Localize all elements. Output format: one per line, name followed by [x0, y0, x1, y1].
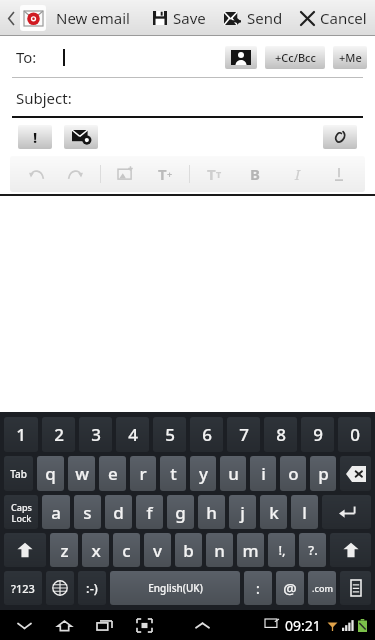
button[interactable]: !, [268, 533, 295, 567]
button[interactable]: a [42, 495, 70, 529]
staticText: c [122, 539, 131, 562]
button[interactable]: Shift [4, 533, 46, 567]
button[interactable]: Send [224, 0, 283, 36]
button[interactable]: h [198, 495, 225, 529]
staticText: q [45, 462, 56, 485]
button[interactable]: d [105, 495, 132, 529]
staticText: 1 [16, 423, 26, 446]
button[interactable]: Back [12, 613, 36, 637]
staticText: 8 [276, 423, 286, 446]
button[interactable]: Save [153, 0, 206, 36]
staticText: ?123 [11, 581, 35, 596]
button[interactable]: q [37, 456, 64, 491]
staticText: 6 [202, 423, 212, 446]
staticText: !, [278, 541, 286, 559]
button[interactable]: 5 [153, 417, 186, 452]
staticText: i [261, 462, 266, 485]
button[interactable]: +Me [333, 46, 367, 69]
button[interactable]: z [50, 533, 78, 567]
staticText: s [83, 501, 92, 524]
button[interactable]: 9 [301, 417, 334, 452]
button[interactable]: Backspace [340, 456, 371, 491]
button[interactable]: e [99, 456, 126, 491]
staticText: g [175, 501, 186, 524]
button[interactable]: g [167, 495, 194, 529]
button[interactable]: i [250, 456, 276, 491]
staticText: +Cc/Bcc [275, 50, 316, 65]
button[interactable]: English(UK) [110, 571, 240, 605]
button[interactable]: Insert text [153, 162, 177, 186]
button[interactable]: Recents [92, 613, 116, 637]
button[interactable]: Insert image [115, 163, 137, 185]
staticText: I [295, 164, 300, 184]
button[interactable]: 4 [116, 417, 149, 452]
button[interactable]: j [229, 495, 256, 529]
button[interactable]: Back [4, 3, 18, 33]
button[interactable]: +Cc/Bcc [265, 46, 325, 69]
button[interactable]: Clipboard [340, 571, 371, 605]
button[interactable]: 1 [4, 417, 38, 452]
button[interactable]: 6 [190, 417, 223, 452]
button[interactable]: Caps Lock [4, 495, 38, 529]
button[interactable]: 7 [227, 417, 260, 452]
staticText: 7 [239, 423, 249, 446]
staticText: Caps Lock [11, 501, 32, 524]
button[interactable]: B [244, 163, 266, 185]
button[interactable]: ?123 [4, 571, 42, 605]
button[interactable]: r [130, 456, 156, 491]
button[interactable]: Change language [46, 571, 74, 605]
button[interactable]: : [244, 571, 272, 605]
button[interactable]: 8 [264, 417, 297, 452]
button[interactable]: .com [308, 571, 336, 605]
button[interactable]: Underline [328, 163, 350, 185]
staticText: n [214, 539, 225, 562]
button[interactable]: c [113, 533, 140, 567]
staticText: a [51, 501, 61, 524]
button[interactable]: l [291, 495, 318, 529]
button[interactable]: Attach file [323, 125, 357, 149]
button[interactable]: Undo [26, 163, 48, 185]
staticText: Subject: [16, 88, 72, 108]
button[interactable]: b [175, 533, 202, 567]
button[interactable]: :-) [78, 571, 106, 605]
staticText: ?. [308, 541, 318, 559]
staticText: :-) [86, 579, 98, 597]
button[interactable]: w [68, 456, 95, 491]
button[interactable]: @ [276, 571, 304, 605]
button[interactable]: o [280, 456, 306, 491]
button[interactable]: 3 [79, 417, 112, 452]
button[interactable]: Cancel [301, 0, 367, 36]
button[interactable]: Redo [64, 163, 86, 185]
staticText: Save [173, 8, 206, 28]
button[interactable]: Enter [322, 495, 371, 529]
button[interactable]: x [82, 533, 109, 567]
button[interactable]: New email [20, 5, 46, 31]
button[interactable]: Home [52, 613, 76, 637]
button[interactable]: m [237, 533, 264, 567]
button[interactable]: Text size [202, 162, 226, 186]
button[interactable]: Priority [18, 125, 52, 149]
button[interactable]: Hide keyboard [190, 613, 214, 637]
button[interactable]: p [310, 456, 336, 491]
button[interactable]: 0 [338, 417, 371, 452]
staticText: v [153, 539, 162, 562]
button[interactable]: ?. [299, 533, 326, 567]
button[interactable]: 2 [42, 417, 75, 452]
button[interactable]: t [160, 456, 186, 491]
button[interactable]: v [144, 533, 171, 567]
staticText: m [242, 539, 259, 562]
button[interactable]: n [206, 533, 233, 567]
staticText: T [207, 164, 216, 184]
staticText: l [302, 501, 307, 524]
button[interactable]: Tab [4, 456, 33, 491]
button[interactable]: Tracking options [64, 125, 98, 149]
button[interactable]: k [260, 495, 287, 529]
button[interactable]: Choose contact [225, 46, 257, 69]
button[interactable]: I [286, 163, 308, 185]
button[interactable]: y [190, 456, 216, 491]
button[interactable]: f [136, 495, 163, 529]
button[interactable]: Screenshot [132, 613, 156, 637]
button[interactable]: Shift [330, 533, 371, 567]
button[interactable]: u [220, 456, 246, 491]
button[interactable]: s [74, 495, 101, 529]
